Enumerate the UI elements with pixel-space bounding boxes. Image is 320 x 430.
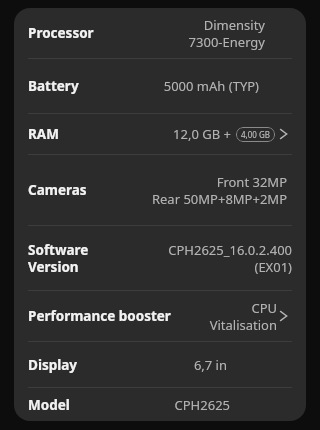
staticText: 12,0 GB + bbox=[173, 125, 231, 143]
staticText: Software Version bbox=[28, 241, 108, 276]
staticText: CPH2625 bbox=[174, 396, 230, 414]
staticText: CPH2625_16.0.2.400 (EX01) bbox=[168, 241, 292, 276]
button[interactable]: Battery bbox=[14, 59, 306, 113]
staticText: 4,00 GB bbox=[241, 129, 270, 140]
button[interactable]: Display bbox=[14, 342, 306, 387]
button[interactable]: Software Version bbox=[14, 226, 306, 290]
button[interactable]: Processor bbox=[14, 8, 306, 58]
staticText: Front 32MP Rear 50MP+8MP+2MP bbox=[151, 173, 287, 208]
button[interactable]: Cameras bbox=[14, 155, 306, 225]
staticText: RAM bbox=[28, 125, 59, 143]
staticText: 6,7 in bbox=[193, 356, 227, 374]
staticText: Model bbox=[28, 396, 70, 414]
staticText: Display bbox=[28, 356, 78, 374]
button[interactable]: RAM bbox=[14, 114, 306, 154]
staticText: Performance booster bbox=[28, 307, 171, 325]
staticText: Cameras bbox=[28, 181, 87, 199]
button[interactable]: Performance booster bbox=[14, 291, 306, 341]
staticText: CPU Vitalisation bbox=[209, 299, 277, 334]
button[interactable]: Model bbox=[14, 388, 306, 421]
staticText: 5000 mAh (TYP) bbox=[163, 77, 259, 95]
staticText: Processor bbox=[28, 24, 94, 42]
staticText: Battery bbox=[28, 77, 79, 95]
staticText: Dimensity 7300-Energy bbox=[188, 16, 265, 51]
